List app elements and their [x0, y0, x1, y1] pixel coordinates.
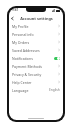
staticText: My Orders: [12, 40, 58, 45]
button[interactable]: Notifications: [9, 54, 63, 62]
button[interactable]: Language: [9, 86, 63, 94]
button[interactable]: Privacy & Security: [9, 70, 63, 78]
staticText: My Profile: [12, 24, 58, 29]
staticText: Account settings: [20, 16, 53, 21]
button[interactable]: Saved Addresses: [9, 46, 63, 54]
staticText: 9:41: [12, 8, 19, 12]
button[interactable]: My Profile: [9, 22, 63, 30]
button[interactable]: Help Center: [9, 78, 63, 86]
button[interactable]: Notifications toggle, on: [54, 57, 60, 60]
button[interactable]: Payment Methods: [9, 62, 63, 70]
staticText: Personal info: [12, 32, 58, 37]
staticText: Payment Methods: [12, 64, 58, 69]
staticText: Language: [12, 88, 49, 93]
staticText: Notifications: [12, 56, 54, 61]
staticText: Help Center: [12, 80, 58, 85]
staticText: English: [49, 88, 60, 92]
staticText: Privacy & Security: [12, 72, 58, 77]
button[interactable]: Back: [9, 15, 16, 22]
staticText: Saved Addresses: [12, 48, 58, 53]
button[interactable]: Personal info: [9, 30, 63, 38]
button[interactable]: My Orders: [9, 38, 63, 46]
